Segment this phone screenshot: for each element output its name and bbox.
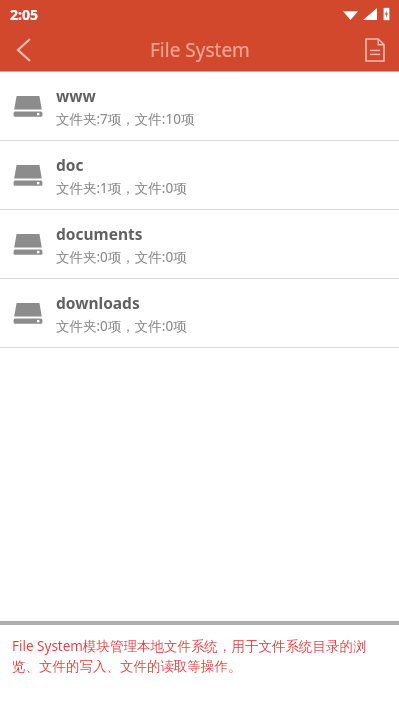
staticText: 2:05 [10,5,38,24]
staticText: 文件夹:7项，文件:10项 [56,110,195,128]
button[interactable]: documents [0,210,399,278]
button[interactable]: Document [351,28,399,71]
button[interactable]: Back [0,28,48,71]
button[interactable]: www [0,72,399,140]
staticText: downloads [56,292,140,313]
staticText: 文件夹:0项，文件:0项 [56,248,187,266]
staticText: documents [56,223,143,244]
staticText: www [56,85,96,106]
staticText: File System [150,37,250,63]
button[interactable]: downloads [0,279,399,347]
staticText: 文件夹:0项，文件:0项 [56,317,187,335]
staticText: 文件夹:1项，文件:0项 [56,179,187,197]
staticText: File System模块管理本地文件系统，用于文件系统目录的浏览、文件的写入、… [12,637,387,675]
button[interactable]: doc [0,141,399,209]
staticText: doc [56,154,84,175]
